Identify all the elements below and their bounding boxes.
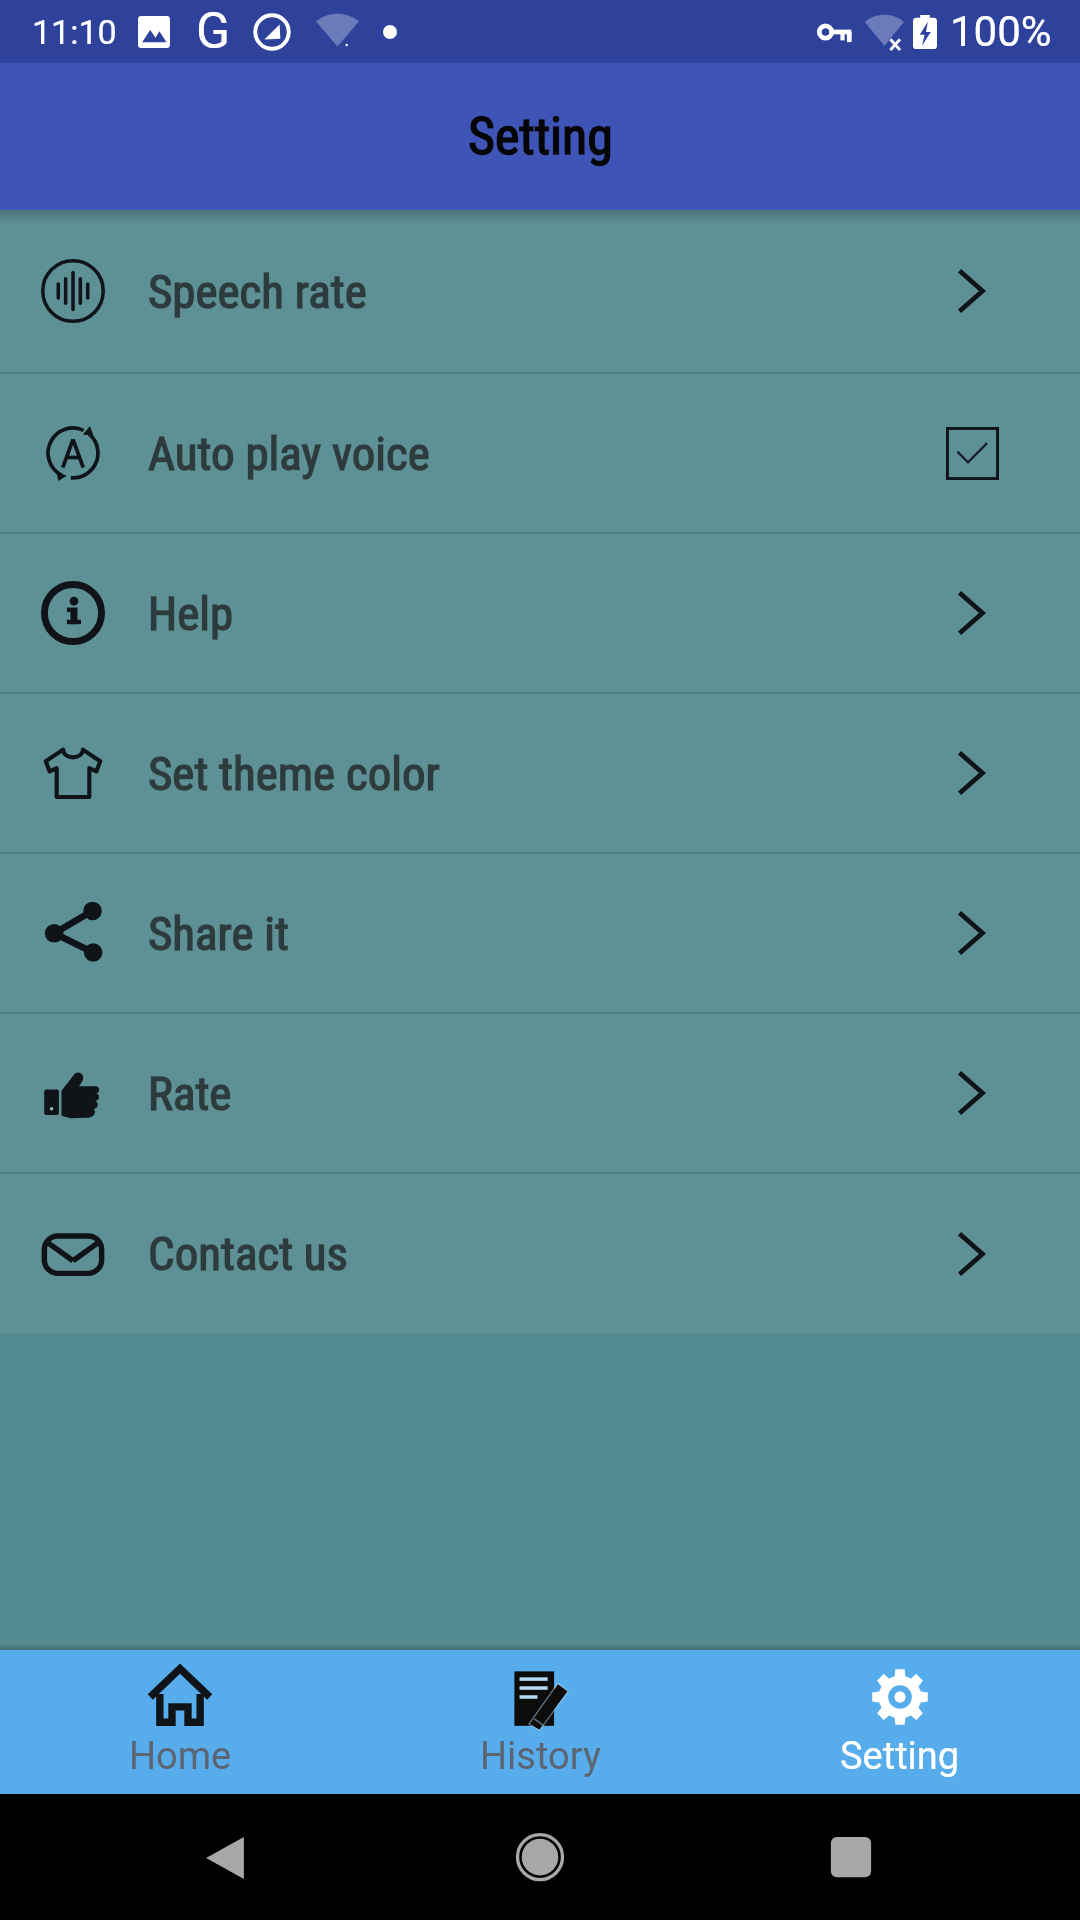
button[interactable]: Share it <box>0 854 1080 1012</box>
button[interactable]: Help <box>0 534 1080 692</box>
other: Rate <box>41 1061 105 1125</box>
button[interactable]: Set theme color <box>0 694 1080 852</box>
other: Auto play voice checkbox <box>946 427 999 480</box>
other: Auto play voice <box>41 421 105 485</box>
other: Open <box>946 748 996 798</box>
other: Setting <box>868 1665 932 1729</box>
other: Open <box>946 1068 996 1118</box>
other: Help <box>41 581 105 645</box>
other: Share it <box>41 901 105 965</box>
staticText: 100% <box>950 7 1052 56</box>
button[interactable]: Setting <box>720 1650 1080 1794</box>
staticText: Help <box>148 586 234 641</box>
button[interactable]: Home <box>510 1825 570 1885</box>
other: Set theme color <box>41 741 105 805</box>
staticText: Set theme color <box>148 746 440 801</box>
button[interactable]: Back <box>195 1826 255 1886</box>
button[interactable]: History <box>360 1650 720 1794</box>
staticText: Rate <box>148 1066 232 1121</box>
other: Home <box>148 1665 212 1729</box>
staticText: Auto play voice <box>148 426 430 481</box>
staticText: History <box>480 1734 601 1779</box>
button[interactable]: Speech rate <box>0 210 1080 372</box>
other: Speech rate <box>41 259 105 323</box>
other: Open <box>946 588 996 638</box>
staticText: Setting <box>468 106 613 167</box>
staticText: Speech rate <box>148 264 367 319</box>
staticText: Home <box>129 1734 232 1779</box>
staticText: Contact us <box>148 1226 348 1281</box>
other: Contact us <box>41 1222 105 1286</box>
staticText: Setting <box>840 1734 960 1779</box>
other: History <box>508 1665 572 1729</box>
other: Open <box>946 1229 996 1279</box>
staticText: Share it <box>148 906 289 961</box>
other: Open <box>946 908 996 958</box>
staticText: 11:10 <box>32 12 117 52</box>
button[interactable]: Auto play voice <box>0 374 1080 532</box>
other: Open <box>946 266 996 316</box>
staticText: G <box>196 2 231 61</box>
button[interactable]: Home <box>0 1650 360 1794</box>
button[interactable]: Rate <box>0 1014 1080 1172</box>
button[interactable]: Contact us <box>0 1174 1080 1333</box>
button[interactable]: Recents <box>821 1825 881 1885</box>
